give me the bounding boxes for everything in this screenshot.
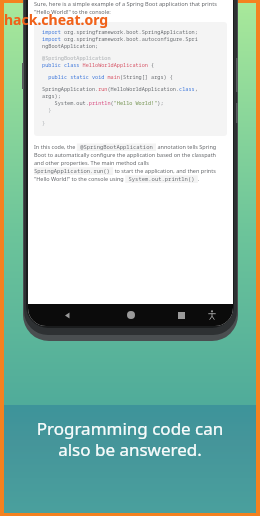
staticText: System.out.println("Hello World!"); xyxy=(39,99,164,106)
button[interactable]: Home xyxy=(118,304,144,326)
staticText: import org.springframework.boot.SpringAp… xyxy=(39,28,198,35)
staticText: Sure, here is a simple example of a Spri… xyxy=(34,0,227,16)
staticText: hack.cheat.org xyxy=(4,10,109,29)
staticText: import org.springframework.boot.autoconf… xyxy=(39,35,198,42)
staticText: args); xyxy=(39,92,61,99)
staticText: } xyxy=(39,106,52,113)
staticText: @SpringBootApplication xyxy=(39,54,111,61)
button[interactable]: Accessibility xyxy=(201,304,223,326)
staticText: In this code, the @SpringBootApplication… xyxy=(34,143,227,183)
staticText: public class HelloWorldApplication { xyxy=(39,61,155,68)
button[interactable]: Recent apps xyxy=(169,304,193,326)
staticText: ngBootApplication; xyxy=(39,42,99,49)
staticText: SpringApplication.run(HelloWorldApplicat… xyxy=(39,85,198,92)
staticText: Programming code can also be answered. xyxy=(4,417,256,461)
button[interactable]: import org.springframework.boot.SpringAp… xyxy=(39,28,222,130)
button[interactable]: Back xyxy=(54,304,80,326)
staticText: public static void main(String[] args) { xyxy=(39,73,173,80)
staticText: } xyxy=(39,119,46,126)
